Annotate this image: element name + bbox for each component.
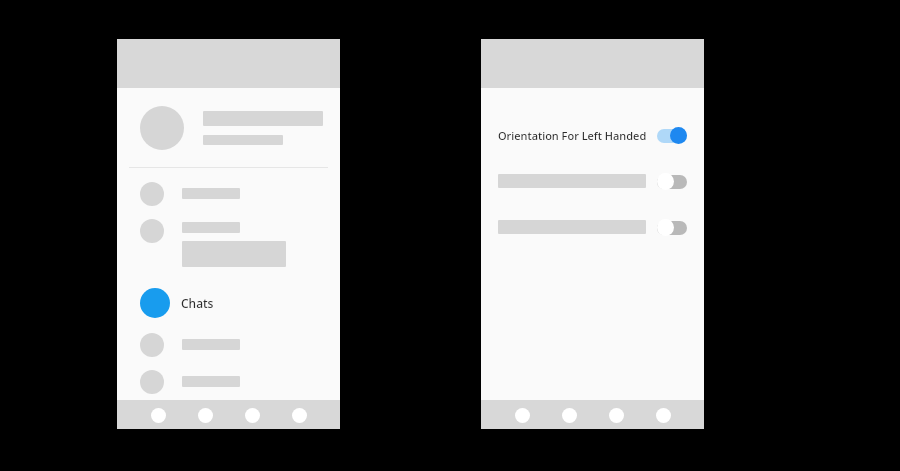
button[interactable]: Tab 4	[288, 404, 310, 426]
staticText: Chats	[181, 295, 214, 311]
button[interactable]: Toggle off	[481, 215, 704, 239]
button[interactable]: Tab 2	[194, 404, 216, 426]
button[interactable]	[117, 219, 340, 267]
button[interactable]: Toggle off	[657, 173, 687, 190]
button[interactable]: Toggle on	[657, 127, 687, 144]
button[interactable]: Toggle off	[481, 169, 704, 193]
button[interactable]: Tab 3	[241, 404, 263, 426]
button[interactable]: Tab 1	[511, 404, 533, 426]
button[interactable]: Orientation For Left Handed	[481, 123, 704, 147]
button[interactable]: Toggle off	[657, 219, 687, 236]
button[interactable]	[117, 326, 340, 363]
button[interactable]: Tab 4	[652, 404, 674, 426]
button[interactable]	[117, 363, 340, 400]
button[interactable]: Chats	[117, 286, 340, 320]
staticText: Orientation For Left Handed	[498, 128, 647, 143]
button[interactable]: Tab 2	[558, 404, 580, 426]
button[interactable]: Tab 3	[605, 404, 627, 426]
button[interactable]	[117, 88, 340, 167]
button[interactable]	[117, 178, 340, 209]
button[interactable]: Tab 1	[147, 404, 169, 426]
